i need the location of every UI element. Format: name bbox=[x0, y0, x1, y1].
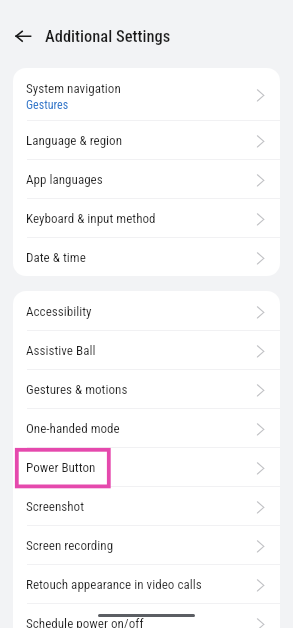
staticText: Retouch appearance in video calls bbox=[26, 577, 252, 592]
button[interactable]: Screen recording bbox=[13, 525, 280, 564]
button[interactable]: System navigation bbox=[13, 68, 280, 120]
staticText: Date & time bbox=[26, 250, 252, 265]
button[interactable]: Language & region bbox=[13, 120, 280, 159]
staticText: Additional Settings bbox=[45, 27, 171, 46]
button[interactable]: App languages bbox=[13, 159, 280, 198]
staticText: Language & region bbox=[26, 133, 252, 148]
staticText: System navigation bbox=[26, 81, 121, 96]
button[interactable]: Date & time bbox=[13, 237, 280, 276]
staticText: App languages bbox=[26, 172, 252, 187]
button[interactable]: Power Button bbox=[13, 447, 280, 486]
staticText: Gestures bbox=[26, 98, 69, 112]
staticText: Schedule power on/off bbox=[26, 616, 252, 628]
button[interactable]: Gestures & motions bbox=[13, 369, 280, 408]
staticText: Gestures & motions bbox=[26, 382, 252, 397]
staticText: Keyboard & input method bbox=[26, 211, 252, 226]
button[interactable]: One-handed mode bbox=[13, 408, 280, 447]
button[interactable]: Screenshot bbox=[13, 486, 280, 525]
staticText: Screenshot bbox=[26, 499, 252, 514]
staticText: Assistive Ball bbox=[26, 343, 252, 358]
button[interactable]: Assistive Ball bbox=[13, 330, 280, 369]
button[interactable]: Keyboard & input method bbox=[13, 198, 280, 237]
staticText: Power Button bbox=[26, 460, 252, 475]
button[interactable]: Back bbox=[15, 23, 41, 49]
staticText: Screen recording bbox=[26, 538, 252, 553]
button[interactable]: Accessibility bbox=[13, 291, 280, 330]
staticText: Accessibility bbox=[26, 304, 252, 319]
staticText: One-handed mode bbox=[26, 421, 252, 436]
button[interactable]: Schedule power on/off bbox=[13, 603, 280, 628]
button[interactable]: Retouch appearance in video calls bbox=[13, 564, 280, 603]
